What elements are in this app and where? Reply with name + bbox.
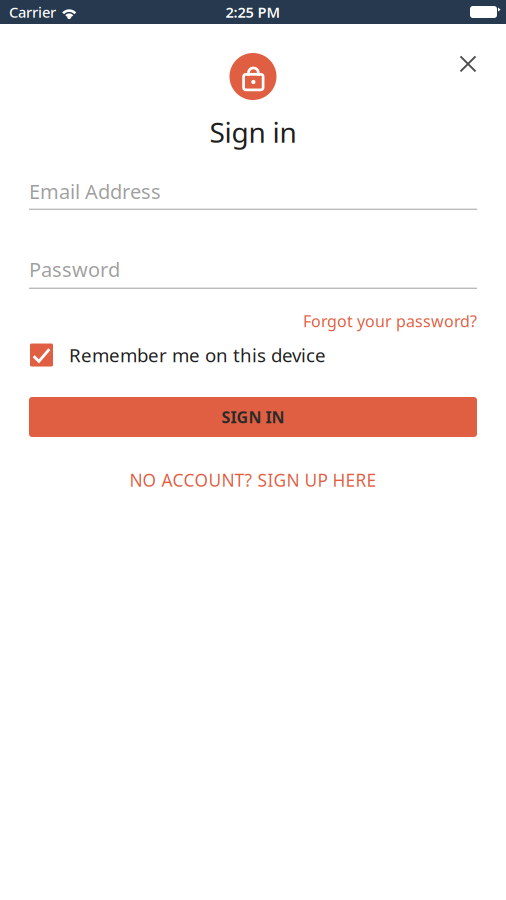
- button[interactable]: Email Address: [29, 178, 477, 210]
- staticText: NO ACCOUNT? SIGN UP HERE: [129, 468, 376, 491]
- staticText: 2:25 PM: [225, 2, 280, 22]
- button[interactable]: Remember me on this device: [30, 343, 326, 367]
- staticText: Password: [29, 256, 120, 283]
- staticText: Carrier: [9, 2, 56, 22]
- staticText: Sign in: [209, 113, 296, 151]
- button[interactable]: Password: [29, 256, 477, 289]
- staticText: SIGN IN: [221, 406, 284, 428]
- button[interactable]: Forgot your password?: [303, 312, 477, 330]
- button[interactable]: NO ACCOUNT? SIGN UP HERE: [129, 470, 376, 490]
- staticText: Remember me on this device: [69, 343, 326, 367]
- button[interactable]: SIGN IN: [29, 397, 477, 437]
- button[interactable]: Close: [446, 42, 490, 86]
- staticText: Forgot your password?: [303, 310, 477, 332]
- staticText: Email Address: [29, 178, 161, 205]
